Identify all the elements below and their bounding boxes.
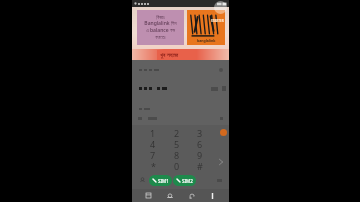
button[interactable]: 9 xyxy=(189,149,211,160)
staticText: SIM1 xyxy=(158,178,169,184)
button[interactable]: 4 xyxy=(142,138,164,149)
button[interactable]: 6 xyxy=(189,138,211,149)
button[interactable]: 3 xyxy=(189,127,211,138)
staticText: * xyxy=(151,160,156,170)
staticText: 5 xyxy=(174,138,180,149)
staticText: banglalink xyxy=(197,38,216,43)
staticText: 4 xyxy=(150,138,156,149)
button[interactable]: SIM1 xyxy=(149,175,172,186)
button[interactable]: Accent action xyxy=(220,129,227,136)
button[interactable]: 2 xyxy=(166,127,188,138)
staticText: STARTER xyxy=(211,19,224,23)
staticText: খুব সহজে xyxy=(160,51,178,59)
staticText: 2 xyxy=(174,127,180,138)
button[interactable]: # xyxy=(189,160,211,170)
button[interactable]: Back xyxy=(186,190,197,201)
staticText: 9 xyxy=(197,149,203,160)
button[interactable]: 5 xyxy=(166,138,188,149)
button[interactable]: Home xyxy=(164,190,175,201)
button[interactable]: Expand xyxy=(217,158,225,166)
staticText: SIM2 xyxy=(182,178,193,184)
staticText: 8 xyxy=(174,149,180,160)
staticText: 7 xyxy=(150,149,156,160)
button[interactable]: 0 xyxy=(166,160,188,170)
button[interactable]: * xyxy=(142,160,164,170)
button[interactable]: Menu xyxy=(207,190,218,201)
button[interactable]: 7 xyxy=(142,149,164,160)
button[interactable]: Recents xyxy=(143,190,154,201)
staticText: 1 xyxy=(150,127,156,138)
button[interactable]: 8 xyxy=(166,149,188,160)
button[interactable]: 1 xyxy=(142,127,164,138)
button[interactable]: SIM2 xyxy=(173,175,196,186)
staticText: 6 xyxy=(197,138,203,149)
button[interactable]: খুব সহজে xyxy=(157,50,181,60)
button[interactable]: More options xyxy=(219,68,223,72)
staticText: 0 xyxy=(174,160,180,170)
staticText: # xyxy=(197,160,203,170)
button[interactable]: Banglalink logo xyxy=(187,10,225,45)
staticText: বিষয়ঃ Banglalink সিম এ balance কম করতেঃ xyxy=(144,15,177,40)
staticText: 3 xyxy=(197,127,203,138)
button[interactable]: বিষয়ঃ Banglalink সিম এ balance কম করতেঃ xyxy=(137,10,184,45)
button[interactable]: Contacts xyxy=(139,177,146,184)
